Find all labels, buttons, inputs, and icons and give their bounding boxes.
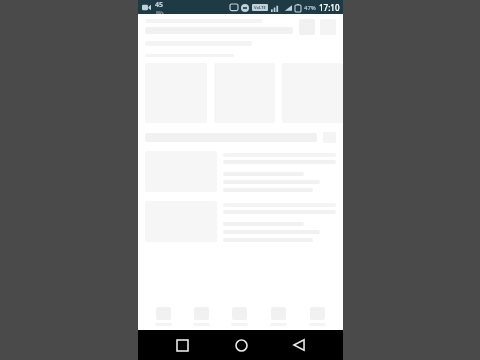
button[interactable]: Back	[284, 330, 314, 360]
button[interactable]: Home	[226, 330, 256, 360]
button[interactable]	[145, 132, 336, 143]
button[interactable]: Navigation item	[259, 302, 298, 330]
staticText: 47%	[304, 4, 316, 12]
button[interactable]: Navigation item	[220, 302, 259, 330]
button[interactable]: Loading list item	[145, 151, 336, 192]
button[interactable]: Recent apps	[167, 330, 197, 360]
button[interactable]	[145, 19, 336, 46]
button[interactable]: Navigation item	[144, 302, 182, 330]
staticText: 17:10	[319, 2, 340, 13]
staticText: 45	[155, 0, 164, 10]
button[interactable]: Loading list item	[145, 201, 336, 242]
staticText: KB/s	[156, 10, 164, 14]
button[interactable]: Navigation item	[182, 302, 220, 330]
staticText: VoLTE	[254, 5, 266, 10]
button[interactable]: Navigation item	[298, 302, 337, 330]
